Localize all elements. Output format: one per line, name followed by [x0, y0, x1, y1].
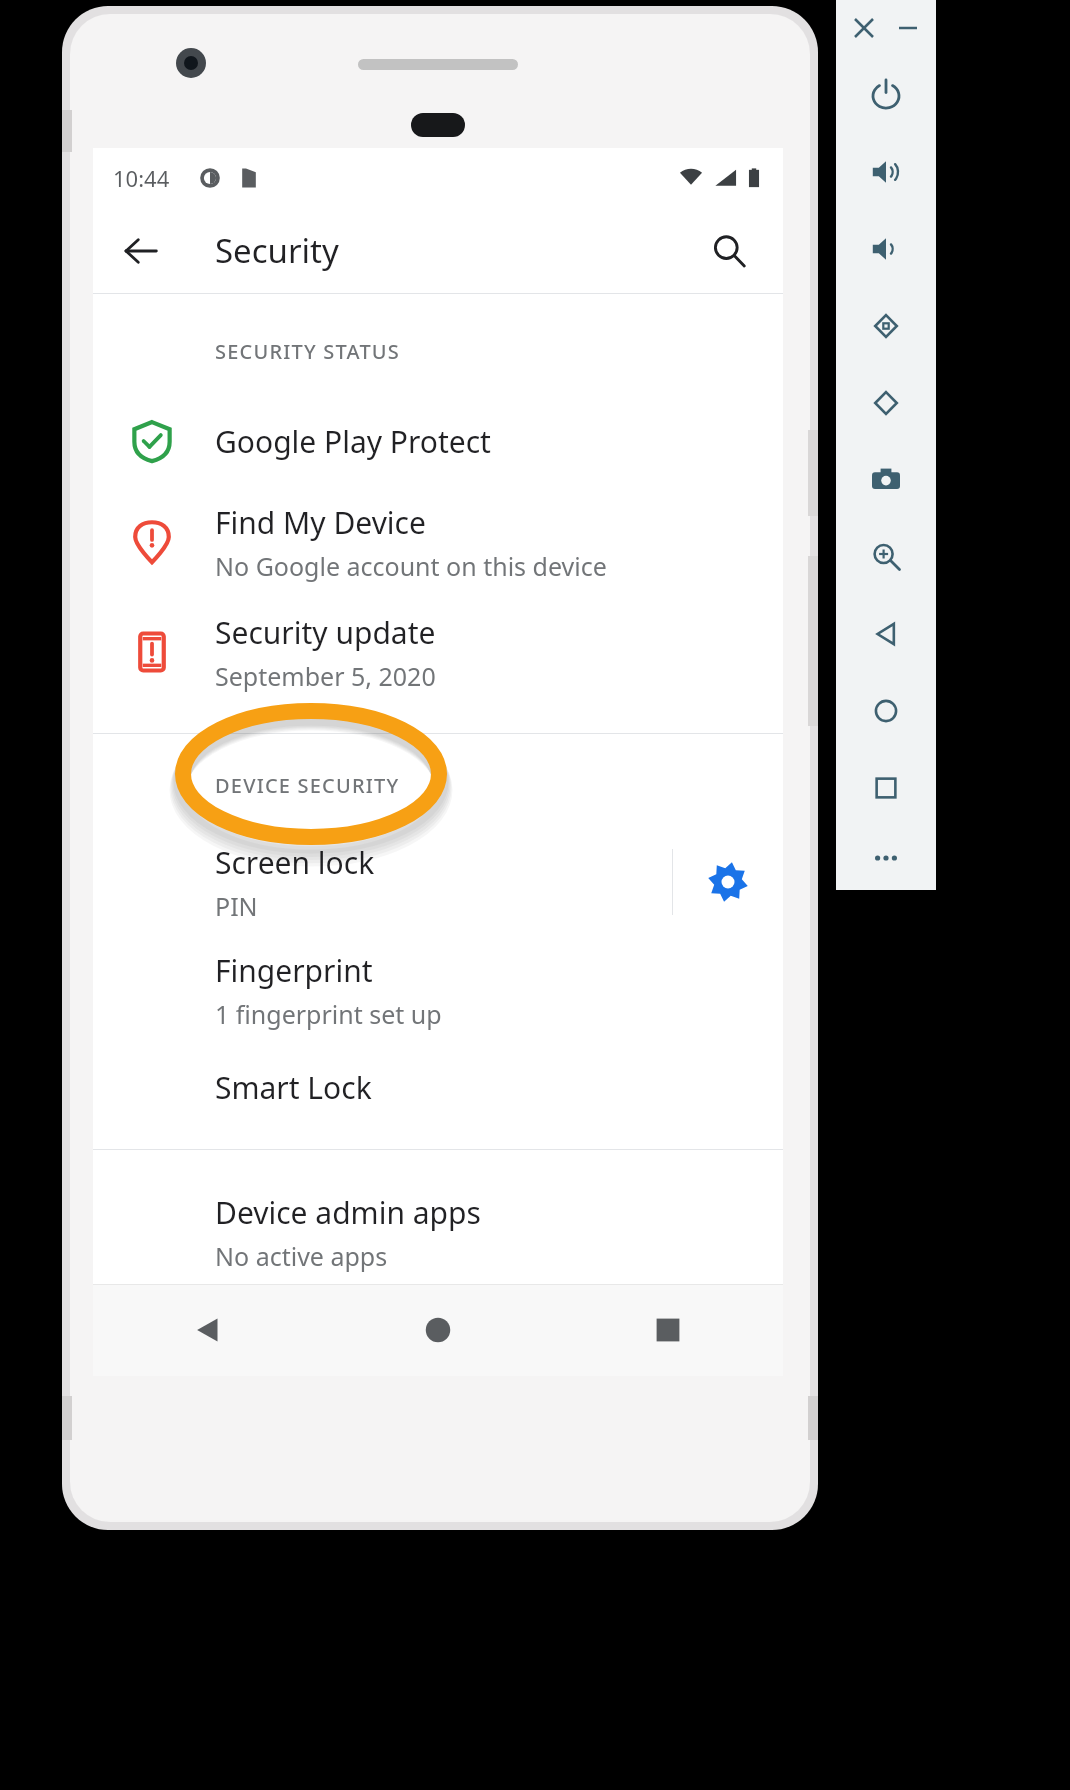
button[interactable]: Home: [323, 1284, 553, 1376]
button[interactable]: Device admin apps: [93, 1180, 783, 1284]
button[interactable]: More: [836, 826, 936, 890]
button[interactable]: Zoom: [836, 518, 936, 595]
button[interactable]: Overview: [836, 749, 936, 826]
button[interactable]: Smart Lock: [93, 1043, 783, 1131]
staticText: Find My Device: [215, 502, 426, 543]
button[interactable]: Google Play Protect: [93, 395, 783, 487]
staticText: 10:44: [113, 163, 170, 193]
button[interactable]: Screen lock: [93, 827, 672, 937]
staticText: Security: [215, 228, 339, 273]
button[interactable]: Volume down: [836, 210, 936, 287]
staticText: No active apps: [215, 1239, 388, 1273]
staticText: PIN: [215, 889, 258, 923]
staticText: No Google account on this device: [215, 549, 607, 583]
button[interactable]: Power: [836, 56, 936, 133]
button[interactable]: Screen lock settings: [673, 827, 783, 937]
staticText: Smart Lock: [215, 1067, 372, 1108]
button[interactable]: Home: [836, 672, 936, 749]
button[interactable]: Screenshot: [836, 441, 936, 518]
staticText: Google Play Protect: [215, 421, 491, 462]
button[interactable]: Search: [695, 217, 763, 285]
button[interactable]: Rotate right: [836, 364, 936, 441]
staticText: SECURITY STATUS: [215, 338, 400, 365]
staticText: 1 fingerprint set up: [215, 997, 442, 1031]
button[interactable]: Back: [107, 217, 175, 285]
staticText: Fingerprint: [215, 950, 373, 991]
button[interactable]: Close: [847, 11, 881, 45]
button[interactable]: Fingerprint: [93, 937, 783, 1043]
staticText: Security update: [215, 612, 436, 653]
button[interactable]: Minimize: [891, 11, 925, 45]
staticText: DEVICE SECURITY: [215, 772, 400, 799]
button[interactable]: Rotate left: [836, 287, 936, 364]
button[interactable]: Back: [836, 595, 936, 672]
button[interactable]: Volume up: [836, 133, 936, 210]
button[interactable]: Find My Device: [93, 487, 783, 597]
button[interactable]: Recent apps: [553, 1284, 783, 1376]
button[interactable]: Back: [93, 1284, 323, 1376]
staticText: Screen lock: [215, 842, 375, 883]
button[interactable]: Security update: [93, 597, 783, 707]
staticText: Device admin apps: [215, 1192, 481, 1233]
staticText: September 5, 2020: [215, 659, 436, 693]
